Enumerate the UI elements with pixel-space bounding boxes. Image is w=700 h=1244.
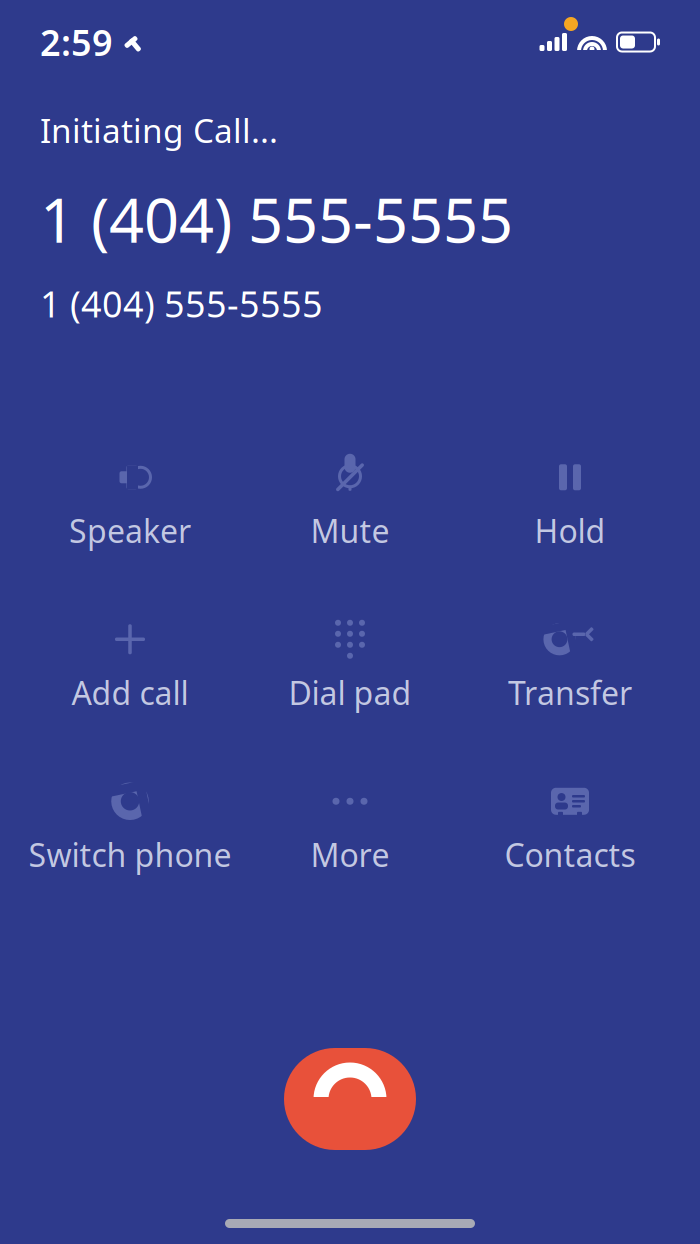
staticText: Speaker [69,509,191,552]
button[interactable]: End call [270,1039,430,1159]
button[interactable]: Mute [240,445,460,565]
button[interactable]: Contacts [460,769,680,889]
button[interactable]: Add call [20,607,240,727]
staticText: 2:59 [40,18,113,66]
button[interactable]: More [240,769,460,889]
button[interactable]: Hold [460,445,680,565]
staticText: Mute [310,509,389,552]
staticText: More [310,833,389,876]
button[interactable]: Speaker [20,445,240,565]
staticText: 1 (404) 555-5555 [40,280,323,327]
staticText: Dial pad [288,671,411,714]
button[interactable]: Transfer [460,607,680,727]
staticText: Transfer [508,671,632,714]
staticText: Initiating Call... [40,108,278,152]
button[interactable]: Switch phone [20,769,240,889]
staticText: Switch phone [28,833,231,876]
staticText: Add call [71,671,188,714]
staticText: 1 (404) 555-5555 [40,178,513,260]
staticText: Hold [534,509,605,552]
button[interactable]: Dial pad [240,607,460,727]
staticText: Contacts [504,833,635,876]
